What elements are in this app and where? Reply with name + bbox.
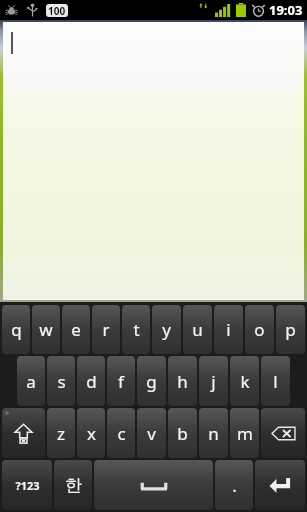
button[interactable]: q — [2, 305, 30, 354]
staticText: g — [146, 370, 157, 393]
staticText: . — [232, 474, 237, 497]
button[interactable]: v — [137, 408, 166, 458]
button[interactable]: i — [214, 305, 243, 354]
button[interactable]: ?123 — [2, 460, 52, 510]
staticText: 100 — [48, 4, 66, 17]
staticText: m — [237, 422, 253, 445]
button[interactable]: r — [92, 305, 120, 354]
button[interactable]: z — [47, 408, 75, 458]
button[interactable]: s — [47, 356, 75, 406]
staticText: h — [177, 370, 188, 393]
button[interactable]: j — [199, 356, 228, 406]
button[interactable]: l — [261, 356, 290, 406]
staticText: d — [86, 370, 97, 393]
button[interactable]: x — [77, 408, 105, 458]
staticText: s — [57, 370, 66, 393]
staticText: w — [39, 318, 53, 341]
button[interactable]: 한 — [54, 460, 92, 510]
button[interactable]: m — [230, 408, 259, 458]
button[interactable] — [3, 22, 304, 300]
staticText: u — [192, 318, 203, 341]
staticText: k — [240, 370, 250, 393]
button[interactable]: b — [168, 408, 197, 458]
button[interactable]: . — [215, 460, 253, 510]
staticText: f — [118, 370, 124, 393]
staticText: 19:03 — [269, 1, 303, 19]
staticText: ?123 — [15, 478, 40, 493]
staticText: p — [285, 318, 296, 341]
staticText: i — [226, 318, 231, 341]
button[interactable]: a — [17, 356, 45, 406]
button[interactable]: y — [152, 305, 181, 354]
button[interactable]: w — [32, 305, 60, 354]
staticText: a — [26, 370, 36, 393]
staticText: x — [87, 422, 96, 445]
staticText: t — [133, 318, 140, 341]
staticText: q — [11, 318, 22, 341]
staticText: c — [117, 422, 126, 445]
button[interactable]: n — [199, 408, 228, 458]
staticText: y — [162, 318, 171, 341]
button[interactable]: t — [122, 305, 150, 354]
staticText: o — [254, 318, 265, 341]
button[interactable]: Shift — [2, 408, 45, 458]
staticText: b — [177, 422, 188, 445]
staticText: e — [71, 318, 81, 341]
staticText: l — [273, 370, 278, 393]
button[interactable]: p — [276, 305, 305, 354]
staticText: z — [57, 422, 65, 445]
button[interactable]: Backspace — [261, 408, 305, 458]
staticText: r — [102, 318, 110, 341]
button[interactable]: f — [107, 356, 135, 406]
staticText: n — [208, 422, 219, 445]
button[interactable]: d — [77, 356, 105, 406]
staticText: v — [147, 422, 156, 445]
button[interactable]: Enter — [255, 460, 305, 510]
button[interactable]: h — [168, 356, 197, 406]
button[interactable]: g — [137, 356, 166, 406]
button[interactable]: u — [183, 305, 212, 354]
button[interactable]: k — [230, 356, 259, 406]
staticText: j — [211, 370, 216, 393]
staticText: 한 — [65, 475, 82, 496]
button[interactable]: c — [107, 408, 135, 458]
button[interactable]: o — [245, 305, 274, 354]
button[interactable]: Space — [94, 460, 213, 510]
button[interactable]: e — [62, 305, 90, 354]
